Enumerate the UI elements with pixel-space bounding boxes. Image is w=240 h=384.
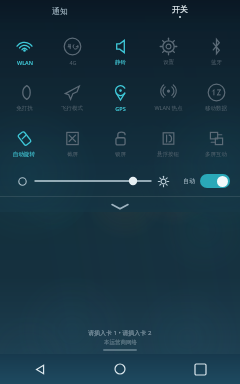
button[interactable]: Recents [160, 354, 240, 384]
button[interactable]: 静铃 [96, 28, 144, 74]
button[interactable]: 蓝牙 [192, 28, 240, 74]
button[interactable]: Auto brightness [200, 174, 230, 188]
button[interactable]: 飞行模式 [48, 74, 96, 120]
button[interactable]: 悬浮按钮 [144, 120, 192, 166]
staticText: 通知 [52, 6, 68, 16]
button[interactable]: Collapse panel [0, 197, 240, 215]
staticText: 开关 [172, 4, 188, 14]
staticText: 静铃 [115, 59, 126, 66]
button[interactable]: 开关 [120, 0, 240, 22]
button[interactable]: Home [80, 354, 160, 384]
staticText: 飞行模式 [61, 105, 83, 112]
staticText: 移动数据 [205, 105, 227, 112]
staticText: 自动旋转 [13, 151, 35, 158]
staticText: 自动 [183, 177, 195, 185]
button[interactable]: WLAN [0, 28, 48, 74]
button[interactable]: GPS [96, 74, 144, 120]
staticText: 蓝牙 [211, 59, 222, 66]
button[interactable]: 截屏 [48, 120, 96, 166]
staticText: 4G [69, 59, 77, 66]
button[interactable]: 4G [48, 28, 96, 74]
button[interactable]: WLAN 热点 [144, 74, 192, 120]
staticText: 悬浮按钮 [157, 151, 179, 158]
staticText: 锁屏 [115, 151, 126, 158]
button[interactable] [35, 173, 151, 189]
staticText: 截屏 [67, 151, 78, 158]
button[interactable]: 移动数据 [192, 74, 240, 120]
staticText: 设置 [163, 59, 174, 66]
button[interactable]: Back [0, 354, 80, 384]
staticText: WLAN 热点 [154, 104, 183, 112]
staticText: GPS [115, 105, 126, 112]
button[interactable]: 锁屏 [96, 120, 144, 166]
button[interactable]: 通知 [0, 0, 120, 22]
button[interactable]: 多屏互动 [192, 120, 240, 166]
button[interactable]: 设置 [144, 28, 192, 74]
staticText: 本运营商网络 [104, 339, 137, 346]
button[interactable]: 自动旋转 [0, 120, 48, 166]
staticText: WLAN [17, 59, 33, 66]
staticText: 免打扰 [16, 105, 33, 112]
staticText: 多屏互动 [205, 151, 227, 158]
staticText: 请插入卡 1 • 请插入卡 2 [88, 329, 152, 337]
button[interactable]: 免打扰 [0, 74, 48, 120]
